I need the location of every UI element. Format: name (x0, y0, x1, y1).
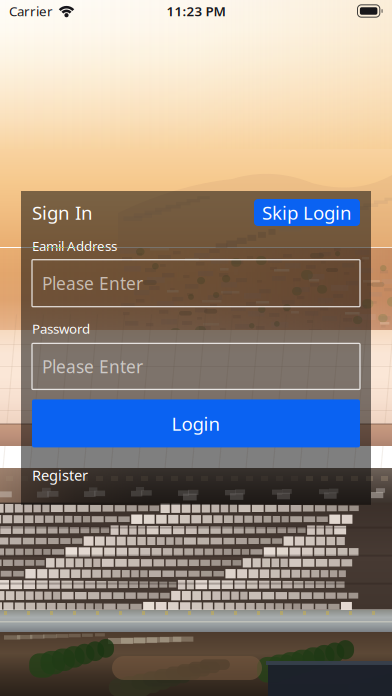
staticText: Register (32, 465, 88, 485)
button[interactable]: Login (32, 399, 360, 447)
button[interactable]: Skip Login (254, 199, 360, 226)
staticText: Please Enter (42, 272, 143, 295)
staticText: Login (171, 411, 220, 436)
staticText: 11:23 PM (166, 2, 225, 20)
staticText: Please Enter (42, 355, 143, 378)
staticText: Carrier (9, 2, 53, 20)
button[interactable]: Register (32, 465, 88, 485)
staticText: Sign In (32, 200, 93, 225)
staticText: Password (32, 320, 90, 337)
staticText: Skip Login (262, 200, 352, 225)
staticText: Eamil Address (32, 237, 117, 255)
